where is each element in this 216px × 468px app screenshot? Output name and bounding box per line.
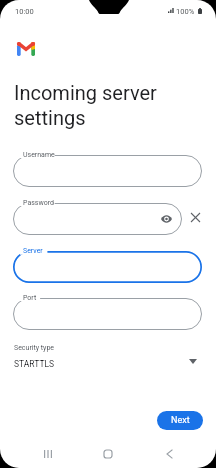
staticText: Incoming server settings <box>14 81 157 130</box>
button[interactable]: Home <box>96 442 120 466</box>
button[interactable]: Security type <box>0 338 216 376</box>
button[interactable]: Back <box>157 442 181 466</box>
staticText: Username <box>23 151 55 159</box>
button[interactable]: Clear password <box>186 208 205 227</box>
staticText: 10:00 <box>15 7 34 16</box>
staticText: Password <box>23 199 54 207</box>
button[interactable]: Show password <box>157 210 175 228</box>
staticText: Server <box>23 247 43 255</box>
button[interactable]: Port <box>13 298 202 330</box>
button[interactable]: Password <box>13 203 182 235</box>
staticText: 100% <box>176 7 195 16</box>
staticText: Next <box>171 415 190 426</box>
staticText: STARTTLS <box>14 359 55 369</box>
staticText: Port <box>23 294 37 302</box>
staticText: Security type <box>14 344 55 352</box>
button[interactable]: Username <box>13 155 202 187</box>
button[interactable]: Server <box>13 251 202 283</box>
button[interactable]: Recent apps <box>36 442 60 466</box>
button[interactable]: Next <box>157 411 203 430</box>
